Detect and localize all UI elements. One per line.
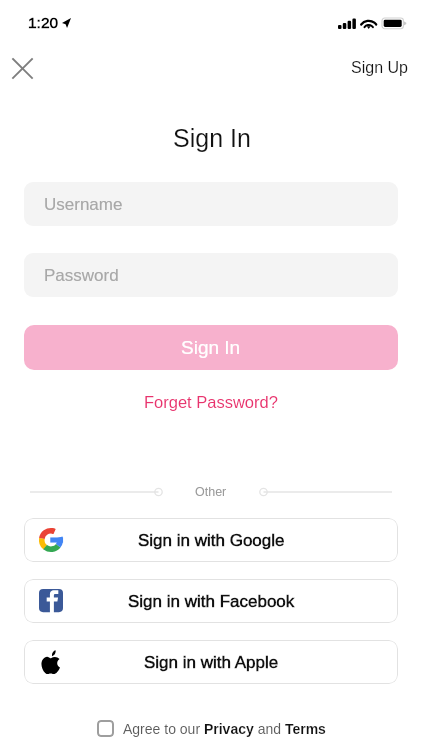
button[interactable]: Password <box>24 253 398 297</box>
staticText: Sign in with Google <box>138 531 285 550</box>
button[interactable]: Sign Up <box>351 59 408 77</box>
button[interactable]: Sign In <box>24 325 398 370</box>
button[interactable]: Sign in with Facebook <box>24 579 398 623</box>
staticText: Sign In <box>181 337 241 358</box>
staticText: Sign Up <box>351 59 408 77</box>
staticText: Agree to our Privacy and Terms <box>123 721 326 737</box>
button[interactable]: Sign in with Apple <box>24 640 398 684</box>
button[interactable]: Close <box>0 46 44 90</box>
staticText: Sign in with Apple <box>144 653 279 672</box>
button[interactable]: Forget Password? <box>144 393 278 411</box>
staticText: Password <box>44 266 119 285</box>
staticText: Other <box>195 485 227 499</box>
button[interactable]: Sign in with Google <box>24 518 398 562</box>
button[interactable]: Agree checkbox <box>97 720 114 737</box>
staticText: Sign In <box>1 124 422 152</box>
staticText: Sign in with Facebook <box>128 592 295 611</box>
staticText: 1:20 <box>28 14 59 31</box>
staticText: Forget Password? <box>144 393 278 411</box>
staticText: Username <box>44 195 123 214</box>
button[interactable]: Username <box>24 182 398 226</box>
